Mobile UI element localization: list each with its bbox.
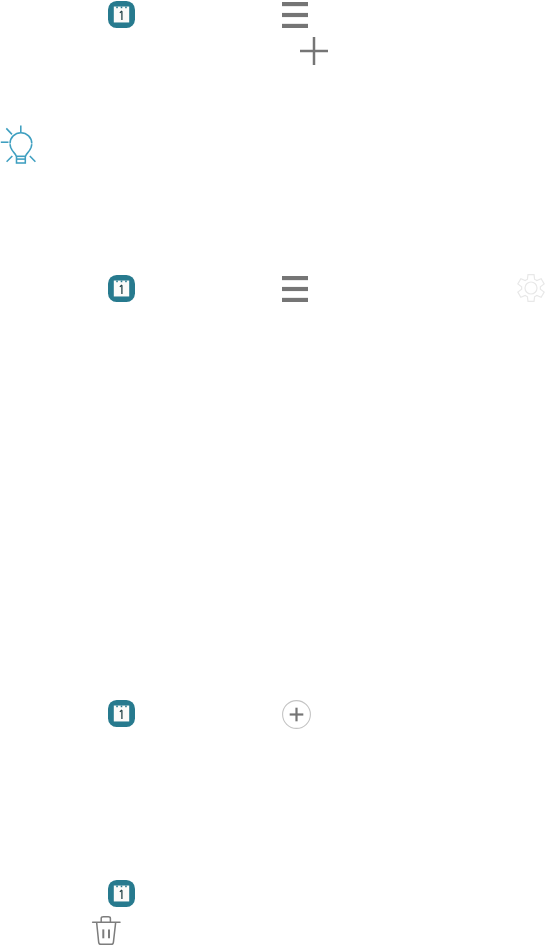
button[interactable]: Menu [282, 2, 308, 28]
button[interactable]: Calendar app [108, 275, 135, 302]
button[interactable]: Add new [282, 700, 311, 729]
button[interactable]: Menu [282, 276, 308, 302]
button[interactable]: Add [300, 37, 328, 65]
button[interactable]: Settings [516, 273, 546, 303]
button[interactable]: Delete [90, 913, 126, 947]
button[interactable]: Calendar app [108, 700, 135, 727]
button[interactable]: Calendar app [108, 1, 135, 28]
button[interactable]: Calendar app [108, 880, 135, 907]
